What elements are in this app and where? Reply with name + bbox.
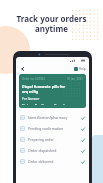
button[interactable]: Order delivered [16,156,89,167]
button[interactable]: Preparing order [16,134,89,145]
staticText: For Sameer [22,97,40,101]
staticText: Order no. 623843 [22,77,45,81]
button[interactable]: Order no. 623843 [19,74,86,108]
staticText: Status : Pending confirmation [22,104,70,105]
staticText: Preparing order [28,137,54,142]
button[interactable]: Pending confirmation [16,123,89,134]
staticText: Identification/pharmacy [28,115,68,120]
staticText: Pending confirmation [28,126,64,131]
staticText: Track your orders anytime [14,13,89,34]
staticText: Dispel fumarate pills for urq mllig [22,84,66,94]
staticText: Help [79,67,86,71]
staticText: Order delivered [28,159,54,164]
button[interactable]: Order dispatched [16,145,89,156]
staticText: Order dispatched [28,148,57,153]
button[interactable]: Back [19,65,27,73]
button[interactable]: Identification/pharmacy [16,112,89,123]
button[interactable]: Help [74,67,86,71]
staticText: 05 Jan, 2021 [67,77,83,81]
